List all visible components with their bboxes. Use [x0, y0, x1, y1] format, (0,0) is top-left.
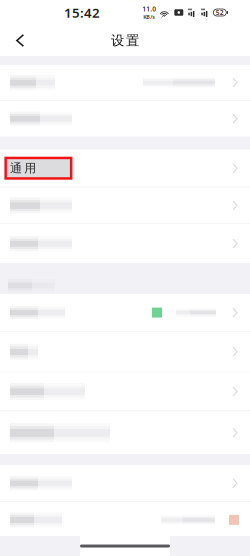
button[interactable]	[0, 65, 250, 100]
staticText: KB/s	[143, 13, 155, 20]
button[interactable]: 通	[0, 150, 250, 187]
button[interactable]	[0, 101, 250, 137]
staticText: 通	[10, 161, 22, 175]
button[interactable]	[0, 502, 250, 538]
button[interactable]	[0, 224, 250, 263]
button[interactable]	[0, 372, 250, 410]
staticText: 52	[216, 8, 224, 17]
button[interactable]	[0, 294, 250, 331]
button[interactable]: Back	[0, 25, 34, 56]
button[interactable]	[0, 411, 250, 454]
button[interactable]	[0, 465, 250, 501]
button[interactable]	[0, 332, 250, 372]
staticText: 用	[24, 161, 36, 175]
staticText: 11.0	[142, 4, 156, 13]
staticText: 15:42	[64, 4, 100, 21]
staticText: 设	[111, 32, 124, 49]
button[interactable]	[0, 187, 250, 223]
staticText: 置	[126, 32, 139, 49]
